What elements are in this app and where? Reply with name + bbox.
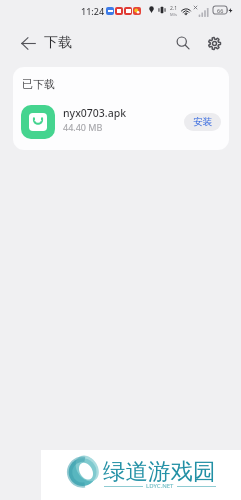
staticText: 安装 [193, 116, 212, 128]
button[interactable]: Back [15, 30, 41, 56]
staticText: LDYC.NET [146, 482, 174, 490]
staticText: nyx0703.apk [63, 106, 127, 120]
staticText: 11:24 [81, 5, 105, 17]
button[interactable]: nyx0703.apk [13, 102, 229, 142]
staticText: 绿道游戏园 [103, 457, 216, 485]
staticText: 44.40 MB [63, 121, 103, 133]
button[interactable]: 安装 [184, 113, 221, 131]
staticText: M/s [170, 12, 178, 17]
staticText: 66 [217, 7, 224, 14]
button[interactable]: Settings [201, 30, 227, 56]
staticText: 2.1 [170, 5, 178, 12]
button[interactable]: Search [170, 30, 196, 56]
staticText: 下载 [44, 34, 72, 52]
staticText: 已下载 [22, 77, 55, 91]
